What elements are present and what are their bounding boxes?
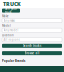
staticText: Make <box>2 14 9 18</box>
button[interactable]: Sell your truck <box>2 9 20 13</box>
staticText: TRUCK <box>3 0 21 8</box>
staticText: Browse all <box>24 51 39 55</box>
staticText: All regions <box>4 38 20 41</box>
staticText: Any make <box>4 19 16 22</box>
staticText: Location <box>2 33 14 37</box>
button[interactable]: Browse all <box>2 51 62 55</box>
staticText: Sell your truck <box>5 7 17 14</box>
staticText: Search trucks <box>23 44 41 48</box>
staticText: Model <box>2 24 11 27</box>
button[interactable]: Search trucks <box>2 44 62 48</box>
staticText: Any model <box>4 28 19 32</box>
staticText: Popular Brands <box>2 59 25 63</box>
